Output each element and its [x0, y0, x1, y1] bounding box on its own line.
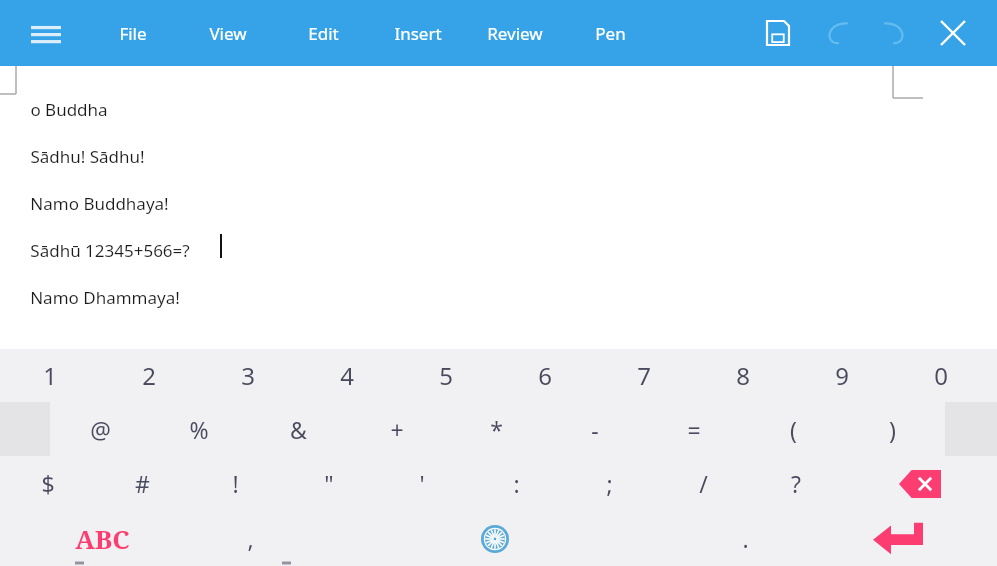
- button[interactable]: 9: [797, 349, 887, 402]
- staticText: ): [889, 414, 896, 445]
- staticText: .: [742, 523, 749, 554]
- staticText: Namo Buddhaya!: [30, 192, 169, 215]
- staticText: 9: [835, 359, 849, 392]
- button[interactable]: .: [705, 511, 785, 566]
- staticText: Review: [487, 22, 543, 45]
- button[interactable]: ): [847, 402, 937, 456]
- button[interactable]: File: [89, 0, 177, 66]
- staticText: ': [419, 468, 425, 499]
- button[interactable]: Undo: [810, 0, 866, 66]
- button[interactable]: 0: [896, 349, 986, 402]
- staticText: ?: [791, 468, 801, 499]
- staticText: &: [290, 414, 307, 445]
- button[interactable]: Edit: [279, 0, 367, 66]
- staticText: *: [490, 414, 503, 445]
- staticText: Sādhu! Sādhu!: [30, 145, 145, 168]
- button[interactable]: ;: [564, 456, 654, 511]
- button[interactable]: @: [55, 402, 145, 456]
- staticText: :: [513, 468, 520, 499]
- staticText: ,: [247, 523, 254, 554]
- button[interactable]: Redo: [866, 0, 922, 66]
- button[interactable]: ?: [751, 456, 841, 511]
- staticText: ABC: [75, 521, 130, 556]
- button[interactable]: 6: [500, 349, 590, 402]
- button[interactable]: 4: [302, 349, 392, 402]
- staticText: 7: [637, 359, 651, 392]
- button[interactable]: (: [748, 402, 838, 456]
- button[interactable]: &: [253, 402, 343, 456]
- staticText: 6: [538, 359, 552, 392]
- staticText: +: [390, 414, 404, 445]
- button[interactable]: Pen: [566, 0, 654, 66]
- button[interactable]: -: [550, 402, 640, 456]
- button[interactable]: Close: [925, 0, 981, 66]
- staticText: View: [209, 22, 247, 45]
- staticText: !: [232, 468, 239, 499]
- button[interactable]: Insert: [374, 0, 462, 66]
- button[interactable]: !: [190, 456, 280, 511]
- button[interactable]: 3: [203, 349, 293, 402]
- staticText: 1: [43, 359, 57, 392]
- button[interactable]: View: [184, 0, 272, 66]
- staticText: Edit: [308, 22, 339, 45]
- button[interactable]: 2: [104, 349, 194, 402]
- button[interactable]: +: [352, 402, 442, 456]
- staticText: (: [790, 414, 797, 445]
- button[interactable]: #: [97, 456, 187, 511]
- button[interactable]: 1: [5, 349, 95, 402]
- staticText: Pen: [595, 22, 626, 45]
- button[interactable]: Save: [750, 0, 806, 66]
- staticText: Sādhū 12345+566=?: [30, 239, 190, 262]
- staticText: o Buddha: [30, 98, 108, 121]
- staticText: Insert: [394, 22, 442, 45]
- staticText: Namo Dhammaya!: [30, 286, 180, 309]
- button[interactable]: /: [658, 456, 748, 511]
- staticText: -: [591, 414, 599, 445]
- staticText: $: [41, 468, 55, 499]
- staticText: 4: [340, 359, 354, 392]
- staticText: ": [324, 468, 334, 499]
- staticText: 3: [241, 359, 255, 392]
- button[interactable]: Space: [300, 511, 690, 566]
- staticText: 2: [142, 359, 156, 392]
- staticText: File: [119, 22, 147, 45]
- staticText: @: [90, 414, 111, 445]
- button[interactable]: ABC: [55, 511, 150, 566]
- staticText: ;: [606, 468, 613, 499]
- button[interactable]: Review: [471, 0, 559, 66]
- staticText: 0: [934, 359, 948, 392]
- button[interactable]: 5: [401, 349, 491, 402]
- button[interactable]: =: [649, 402, 739, 456]
- button[interactable]: $: [3, 456, 93, 511]
- staticText: %: [189, 414, 209, 445]
- button[interactable]: %: [154, 402, 244, 456]
- button[interactable]: Enter: [850, 511, 945, 566]
- button[interactable]: 7: [599, 349, 689, 402]
- button[interactable]: ,: [210, 511, 290, 566]
- staticText: 5: [439, 359, 453, 392]
- button[interactable]: Backspace: [875, 456, 965, 511]
- staticText: #: [135, 468, 150, 499]
- staticText: =: [687, 414, 701, 445]
- button[interactable]: *: [451, 402, 541, 456]
- button[interactable]: :: [471, 456, 561, 511]
- staticText: /: [699, 468, 708, 499]
- button[interactable]: ': [377, 456, 467, 511]
- staticText: 8: [736, 359, 750, 392]
- button[interactable]: Menu: [24, 0, 68, 66]
- button[interactable]: 8: [698, 349, 788, 402]
- button[interactable]: ": [284, 456, 374, 511]
